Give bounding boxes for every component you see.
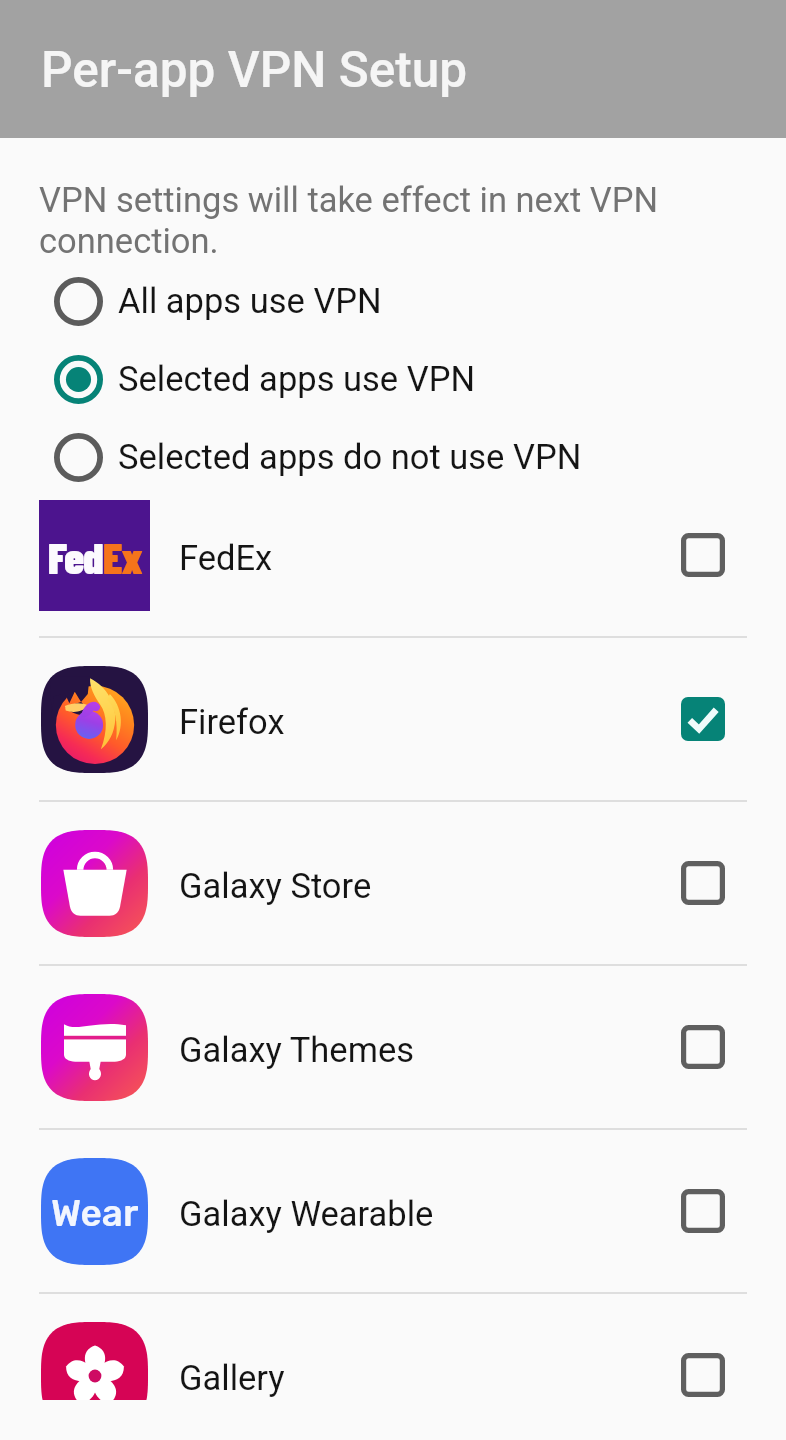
- button[interactable]: Not selected: [681, 861, 725, 905]
- staticText: Selected apps do not use VPN: [118, 437, 582, 477]
- button[interactable]: Gallery: [0, 1294, 786, 1440]
- staticText: Firefox: [179, 702, 285, 742]
- button[interactable]: Not selected: [681, 533, 725, 577]
- button[interactable]: Selected apps use VPN: [0, 340, 786, 418]
- staticText: Galaxy Wearable: [179, 1194, 434, 1234]
- button[interactable]: Galaxy Themes: [0, 966, 786, 1128]
- staticText: Selected apps use VPN: [118, 359, 476, 399]
- button[interactable]: Selected: [681, 697, 725, 741]
- staticText: Wear: [51, 1191, 139, 1235]
- staticText: VPN settings will take effect in next VP…: [39, 180, 696, 262]
- staticText: Fed: [48, 530, 103, 583]
- button[interactable]: Not selected: [681, 1353, 725, 1397]
- button[interactable]: Fed: [0, 474, 786, 636]
- button[interactable]: Not selected: [681, 1025, 725, 1069]
- staticText: All apps use VPN: [118, 281, 382, 321]
- button[interactable]: Firefox: [0, 638, 786, 800]
- button[interactable]: Selected apps do not use VPN: [0, 418, 786, 496]
- staticText: Galaxy Themes: [179, 1030, 414, 1070]
- staticText: Ex: [103, 530, 142, 583]
- button[interactable]: Not selected: [681, 1189, 725, 1233]
- button[interactable]: Wear: [0, 1130, 786, 1292]
- button[interactable]: All apps use VPN: [0, 262, 786, 340]
- button[interactable]: Galaxy Store: [0, 802, 786, 964]
- staticText: Gallery: [179, 1358, 285, 1398]
- staticText: Per-app VPN Setup: [41, 41, 468, 99]
- staticText: FedEx: [179, 538, 273, 578]
- staticText: Galaxy Store: [179, 866, 372, 906]
